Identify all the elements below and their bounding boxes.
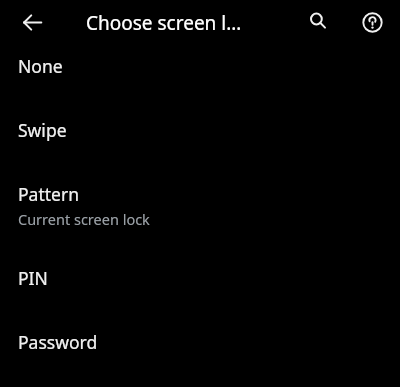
staticText: Swipe [18, 118, 67, 142]
button[interactable]: Back [12, 2, 52, 42]
button[interactable]: Pattern [0, 173, 400, 260]
button[interactable]: None [0, 45, 400, 109]
button[interactable]: PIN [0, 260, 400, 324]
button[interactable]: Search [298, 1, 338, 41]
button[interactable]: Help [352, 2, 392, 42]
staticText: PIN [18, 266, 48, 290]
staticText: None [18, 54, 63, 78]
button[interactable]: Swipe [0, 109, 400, 173]
staticText: Current screen lock [18, 209, 150, 229]
button[interactable]: Password [0, 324, 400, 387]
staticText: Choose screen l… [86, 10, 242, 36]
staticText: Password [18, 330, 98, 354]
staticText: Pattern [18, 182, 79, 206]
